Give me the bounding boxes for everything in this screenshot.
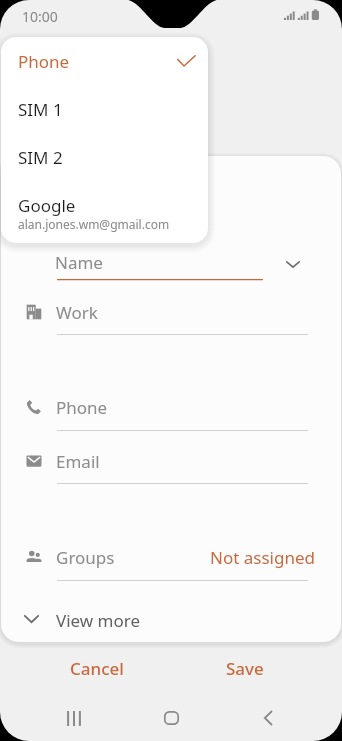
button[interactable]: Phone [1,37,208,85]
staticText: Not assigned [210,546,315,569]
staticText: Name [55,251,103,274]
staticText: Groups [56,546,115,569]
button[interactable]: View more [0,608,342,638]
button[interactable]: SIM 1 [1,85,208,133]
staticText: 10:00 [22,7,58,26]
button[interactable]: Home [155,702,187,734]
button[interactable]: Groups [0,547,342,577]
staticText: SIM 2 [18,146,63,169]
button[interactable]: Back [252,702,284,734]
button[interactable]: Save [185,650,305,686]
staticText: Google [18,194,76,217]
button[interactable]: Recents [58,702,90,734]
staticText: SIM 1 [18,98,63,121]
staticText: Phone [56,396,108,419]
staticText: Save [226,657,264,680]
staticText: Cancel [70,657,124,680]
button[interactable]: Work [0,302,342,332]
button[interactable]: SIM 2 [1,133,208,181]
button[interactable]: Phone [0,397,342,427]
button[interactable]: Name [49,251,271,279]
staticText: alan.jones.wm@gmail.com [18,216,170,232]
staticText: Work [56,301,98,324]
staticText: Email [56,450,100,473]
button[interactable]: Expand name [273,249,313,279]
staticText: Phone [18,50,70,73]
staticText: View more [56,609,141,632]
button[interactable]: Cancel [37,650,157,686]
button[interactable]: Google [1,181,208,243]
button[interactable]: Email [0,451,342,481]
